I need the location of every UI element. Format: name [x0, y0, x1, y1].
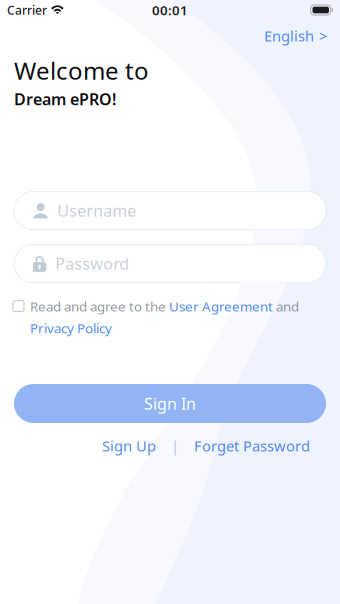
staticText: Password	[55, 253, 129, 274]
button[interactable]: Forget Password	[186, 431, 318, 460]
staticText: Username	[57, 200, 136, 221]
staticText: Welcome to	[14, 54, 149, 86]
staticText: English	[264, 26, 314, 45]
staticText: Dream ePRO!	[14, 88, 116, 109]
staticText: >	[319, 26, 327, 45]
staticText: Sign In	[144, 393, 196, 414]
staticText: Read and agree to the	[30, 298, 169, 315]
button[interactable]: Sign Up	[94, 431, 164, 460]
staticText: Carrier	[7, 2, 47, 18]
staticText: User Agreement	[169, 298, 273, 315]
staticText: 00:01	[152, 1, 188, 19]
button[interactable]: Sign In	[14, 384, 326, 423]
staticText: Sign Up	[102, 436, 156, 455]
staticText: Privacy Policy	[30, 319, 112, 337]
button[interactable]: English	[251, 21, 340, 50]
button[interactable]: Agree to terms	[13, 298, 24, 312]
staticText: Forget Password	[194, 436, 310, 455]
staticText: |	[171, 436, 179, 455]
staticText: and	[273, 298, 299, 315]
